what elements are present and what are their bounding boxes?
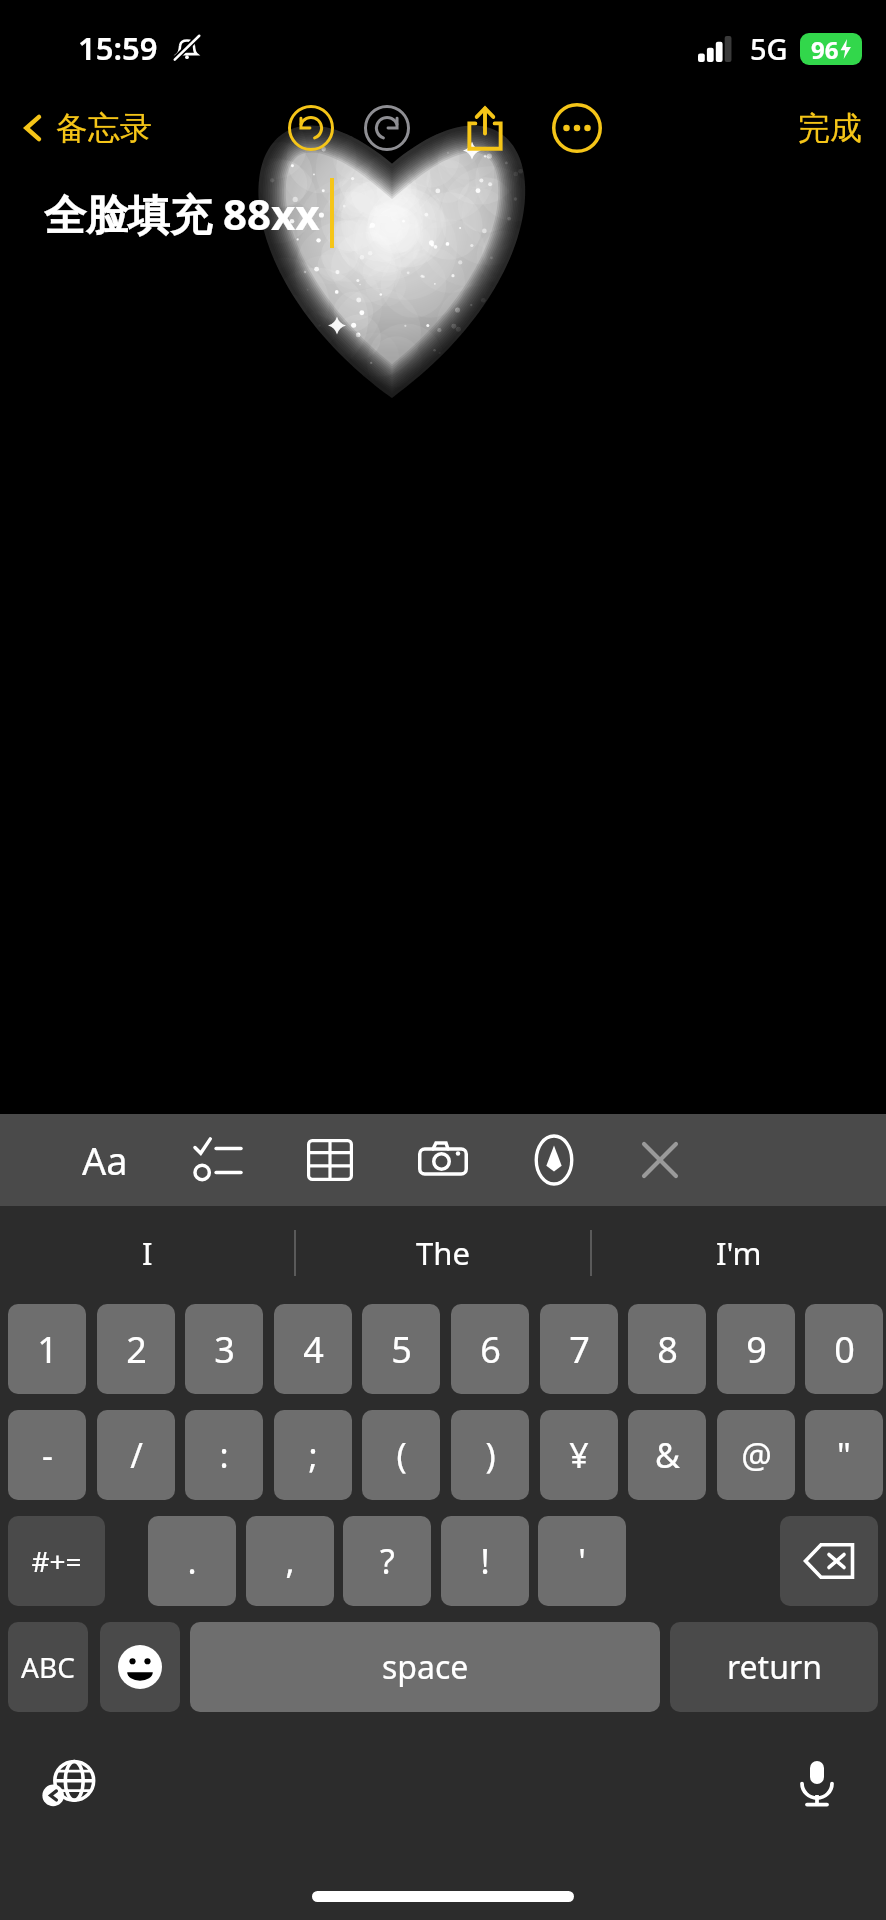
button[interactable]: Dictation: [782, 1748, 852, 1818]
staticText: 5G: [750, 29, 788, 68]
staticText: !: [480, 1538, 490, 1584]
button[interactable]: Markup: [522, 1128, 586, 1192]
staticText: ;: [308, 1432, 318, 1478]
staticText: /: [130, 1432, 143, 1478]
staticText: ,: [285, 1538, 295, 1584]
button[interactable]: return: [670, 1622, 878, 1712]
button[interactable]: /: [97, 1410, 175, 1500]
staticText: ': [578, 1538, 586, 1584]
staticText: 15:59: [78, 27, 158, 69]
button[interactable]: 6: [451, 1304, 529, 1394]
button[interactable]: Close: [628, 1128, 692, 1192]
staticText: ABC: [21, 1648, 75, 1686]
button[interactable]: ): [451, 1410, 529, 1500]
button[interactable]: ,: [246, 1516, 334, 1606]
button[interactable]: 5: [362, 1304, 440, 1394]
button[interactable]: 4: [274, 1304, 352, 1394]
button[interactable]: Share: [456, 99, 514, 157]
staticText: -: [42, 1432, 53, 1478]
button[interactable]: 7: [540, 1304, 618, 1394]
staticText: ": [837, 1432, 851, 1478]
button[interactable]: 9: [717, 1304, 795, 1394]
staticText: 全脸填充 88xx: [44, 185, 320, 242]
button[interactable]: #+=: [8, 1516, 105, 1606]
button[interactable]: ': [538, 1516, 626, 1606]
staticText: :: [219, 1432, 229, 1478]
staticText: 3: [214, 1325, 235, 1374]
staticText: 9: [746, 1325, 767, 1374]
staticText: Aa: [82, 1134, 128, 1186]
staticText: .: [187, 1538, 197, 1584]
button[interactable]: The: [296, 1206, 590, 1300]
button[interactable]: I: [0, 1206, 294, 1300]
button[interactable]: 3: [185, 1304, 263, 1394]
staticText: 0: [834, 1325, 855, 1374]
button[interactable]: Camera: [411, 1128, 475, 1192]
button[interactable]: Format: [73, 1128, 137, 1192]
staticText: ?: [380, 1538, 395, 1584]
button[interactable]: ABC: [8, 1622, 88, 1712]
staticText: ): [485, 1432, 496, 1478]
button[interactable]: More: [548, 99, 606, 157]
staticText: 7: [569, 1325, 590, 1374]
button[interactable]: 完成: [798, 108, 862, 148]
staticText: return: [727, 1645, 822, 1689]
staticText: 4: [303, 1325, 324, 1374]
button[interactable]: ?: [343, 1516, 431, 1606]
staticText: I'm: [716, 1232, 762, 1274]
staticText: 8: [657, 1325, 678, 1374]
staticText: ¥: [569, 1432, 589, 1478]
button[interactable]: 0: [805, 1304, 883, 1394]
button[interactable]: 1: [8, 1304, 86, 1394]
button[interactable]: &: [628, 1410, 706, 1500]
staticText: &: [655, 1432, 680, 1478]
staticText: space: [382, 1645, 469, 1689]
staticText: 6: [480, 1325, 501, 1374]
staticText: 5: [391, 1325, 412, 1374]
staticText: (: [396, 1432, 407, 1478]
button[interactable]: (: [362, 1410, 440, 1500]
button[interactable]: 备忘录: [18, 108, 152, 148]
button[interactable]: ¥: [540, 1410, 618, 1500]
staticText: 96: [811, 33, 839, 65]
staticText: The: [416, 1232, 470, 1274]
staticText: 完成: [798, 108, 862, 148]
button[interactable]: .: [148, 1516, 236, 1606]
button[interactable]: Redo: [360, 101, 414, 155]
staticText: 2: [126, 1325, 147, 1374]
staticText: @: [741, 1432, 772, 1478]
button[interactable]: space: [190, 1622, 660, 1712]
staticText: 备忘录: [56, 108, 152, 148]
button[interactable]: Emoji: [100, 1622, 180, 1712]
button[interactable]: I'm: [592, 1206, 886, 1300]
button[interactable]: Table: [298, 1128, 362, 1192]
button[interactable]: @: [717, 1410, 795, 1500]
button[interactable]: -: [8, 1410, 86, 1500]
button[interactable]: Undo: [284, 101, 338, 155]
button[interactable]: 8: [628, 1304, 706, 1394]
button[interactable]: 2: [97, 1304, 175, 1394]
button[interactable]: Switch keyboard: [36, 1748, 106, 1818]
button[interactable]: ": [805, 1410, 883, 1500]
button[interactable]: Backspace: [780, 1516, 878, 1606]
button[interactable]: :: [185, 1410, 263, 1500]
staticText: #+=: [31, 1542, 82, 1580]
staticText: 1: [37, 1325, 58, 1374]
button[interactable]: !: [441, 1516, 529, 1606]
button[interactable]: ;: [274, 1410, 352, 1500]
staticText: I: [142, 1232, 153, 1274]
button[interactable]: Checklist: [186, 1128, 250, 1192]
